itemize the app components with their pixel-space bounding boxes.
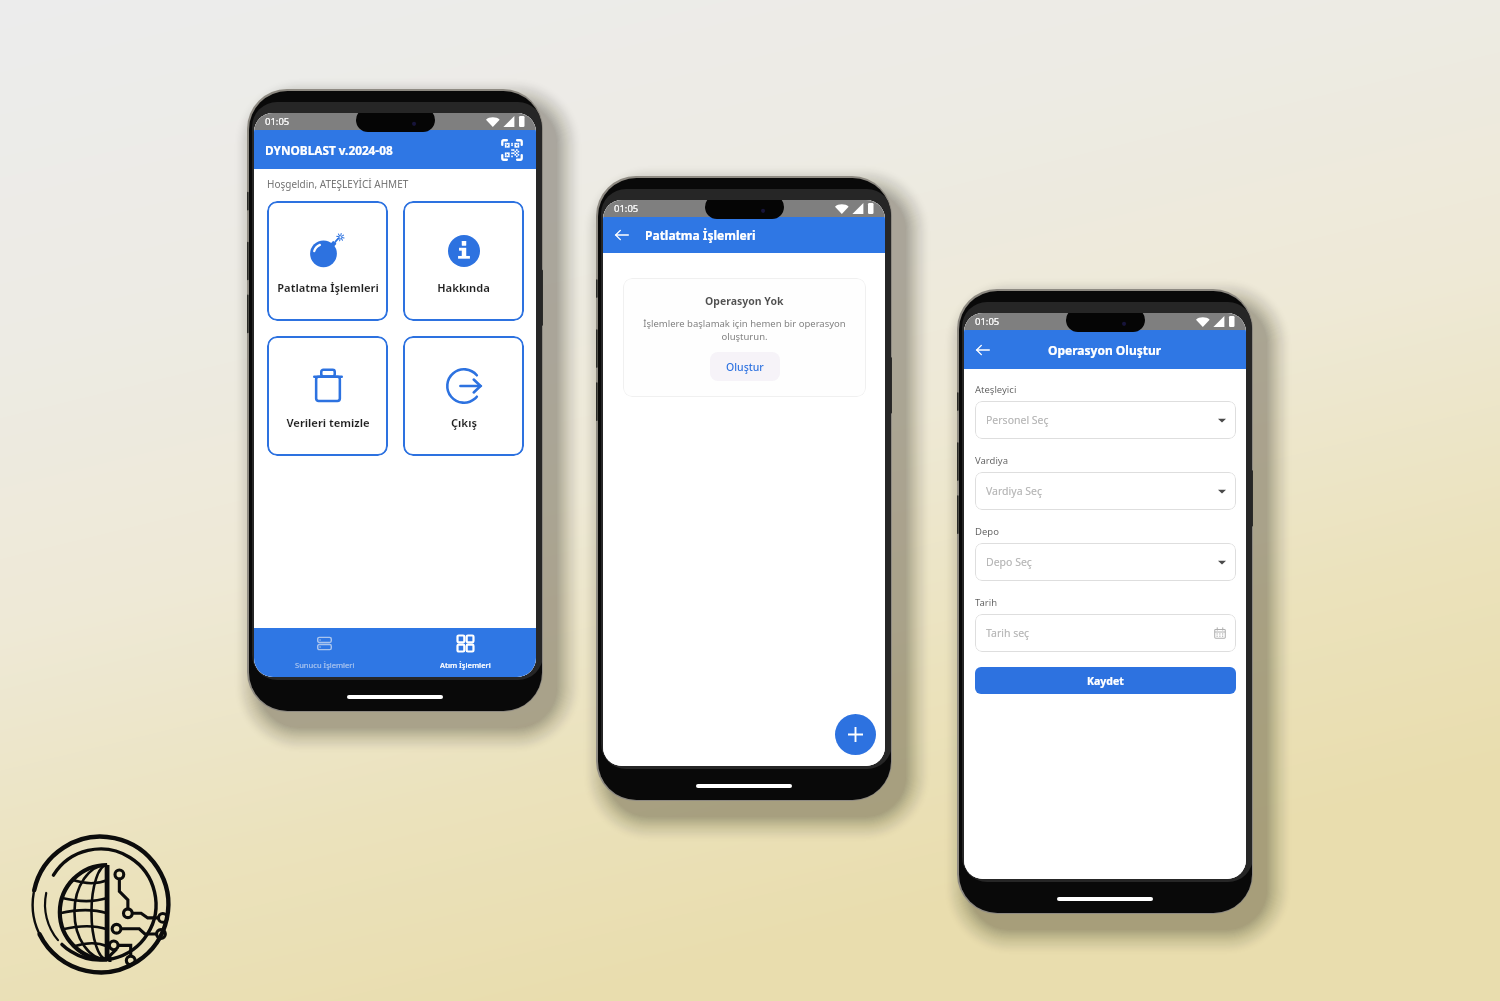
staticText: Operasyon Oluştur	[1048, 342, 1162, 358]
staticText: DYNOBLAST v.2024-08	[265, 142, 393, 158]
staticText: Çıkış	[451, 415, 477, 430]
button[interactable]: Vardiya Seç	[975, 472, 1236, 510]
staticText: Depo Seç	[986, 555, 1032, 569]
button[interactable]: Çıkış	[403, 336, 524, 456]
button[interactable]: Kaydet	[975, 667, 1236, 694]
button[interactable]: Personel Seç	[975, 401, 1236, 439]
button[interactable]: Depo Seç	[975, 543, 1236, 581]
staticText: Vardiya	[975, 454, 1009, 467]
button[interactable]: Verileri temizle	[267, 336, 388, 456]
staticText: Verileri temizle	[286, 415, 370, 430]
staticText: Tarih seç	[986, 626, 1030, 640]
staticText: Patlatma İşlemleri	[645, 227, 756, 243]
staticText: Kaydet	[1087, 674, 1124, 688]
button[interactable]: Scan QR code	[501, 139, 523, 161]
staticText: Hakkında	[437, 280, 490, 295]
staticText: Atım İşlemleri	[440, 660, 491, 670]
staticText: Personel Seç	[986, 413, 1049, 427]
button[interactable]: Back	[612, 225, 632, 245]
staticText: İşlemlere başlamak için hemen bir operas…	[631, 317, 858, 343]
button[interactable]: Hakkında	[403, 201, 524, 321]
staticText: 01:05	[975, 315, 1000, 328]
button[interactable]: Tarih seç	[975, 614, 1236, 652]
button[interactable]: Back	[973, 340, 993, 360]
button[interactable]: Patlatma İşlemleri	[267, 201, 388, 321]
staticText: Operasyon Yok	[705, 294, 784, 308]
staticText: Vardiya Seç	[986, 484, 1042, 498]
staticText: Sunucu İşlemleri	[295, 660, 355, 670]
staticText: Tarih	[975, 596, 998, 609]
staticText: Patlatma İşlemleri	[277, 280, 379, 295]
button[interactable]: Add operation	[835, 714, 876, 755]
staticText: 01:05	[614, 202, 639, 215]
button[interactable]: Atım İşlemleri	[395, 628, 536, 677]
staticText: 01:05	[265, 115, 290, 128]
staticText: Oluştur	[726, 360, 764, 374]
button[interactable]: Oluştur	[710, 352, 780, 381]
staticText: Depo	[975, 525, 999, 538]
staticText: Hoşgeldin, ATEŞLEYİCİ AHMET	[267, 177, 409, 191]
staticText: Ateşleyici	[975, 383, 1017, 396]
button[interactable]: Sunucu İşlemleri	[254, 628, 395, 677]
